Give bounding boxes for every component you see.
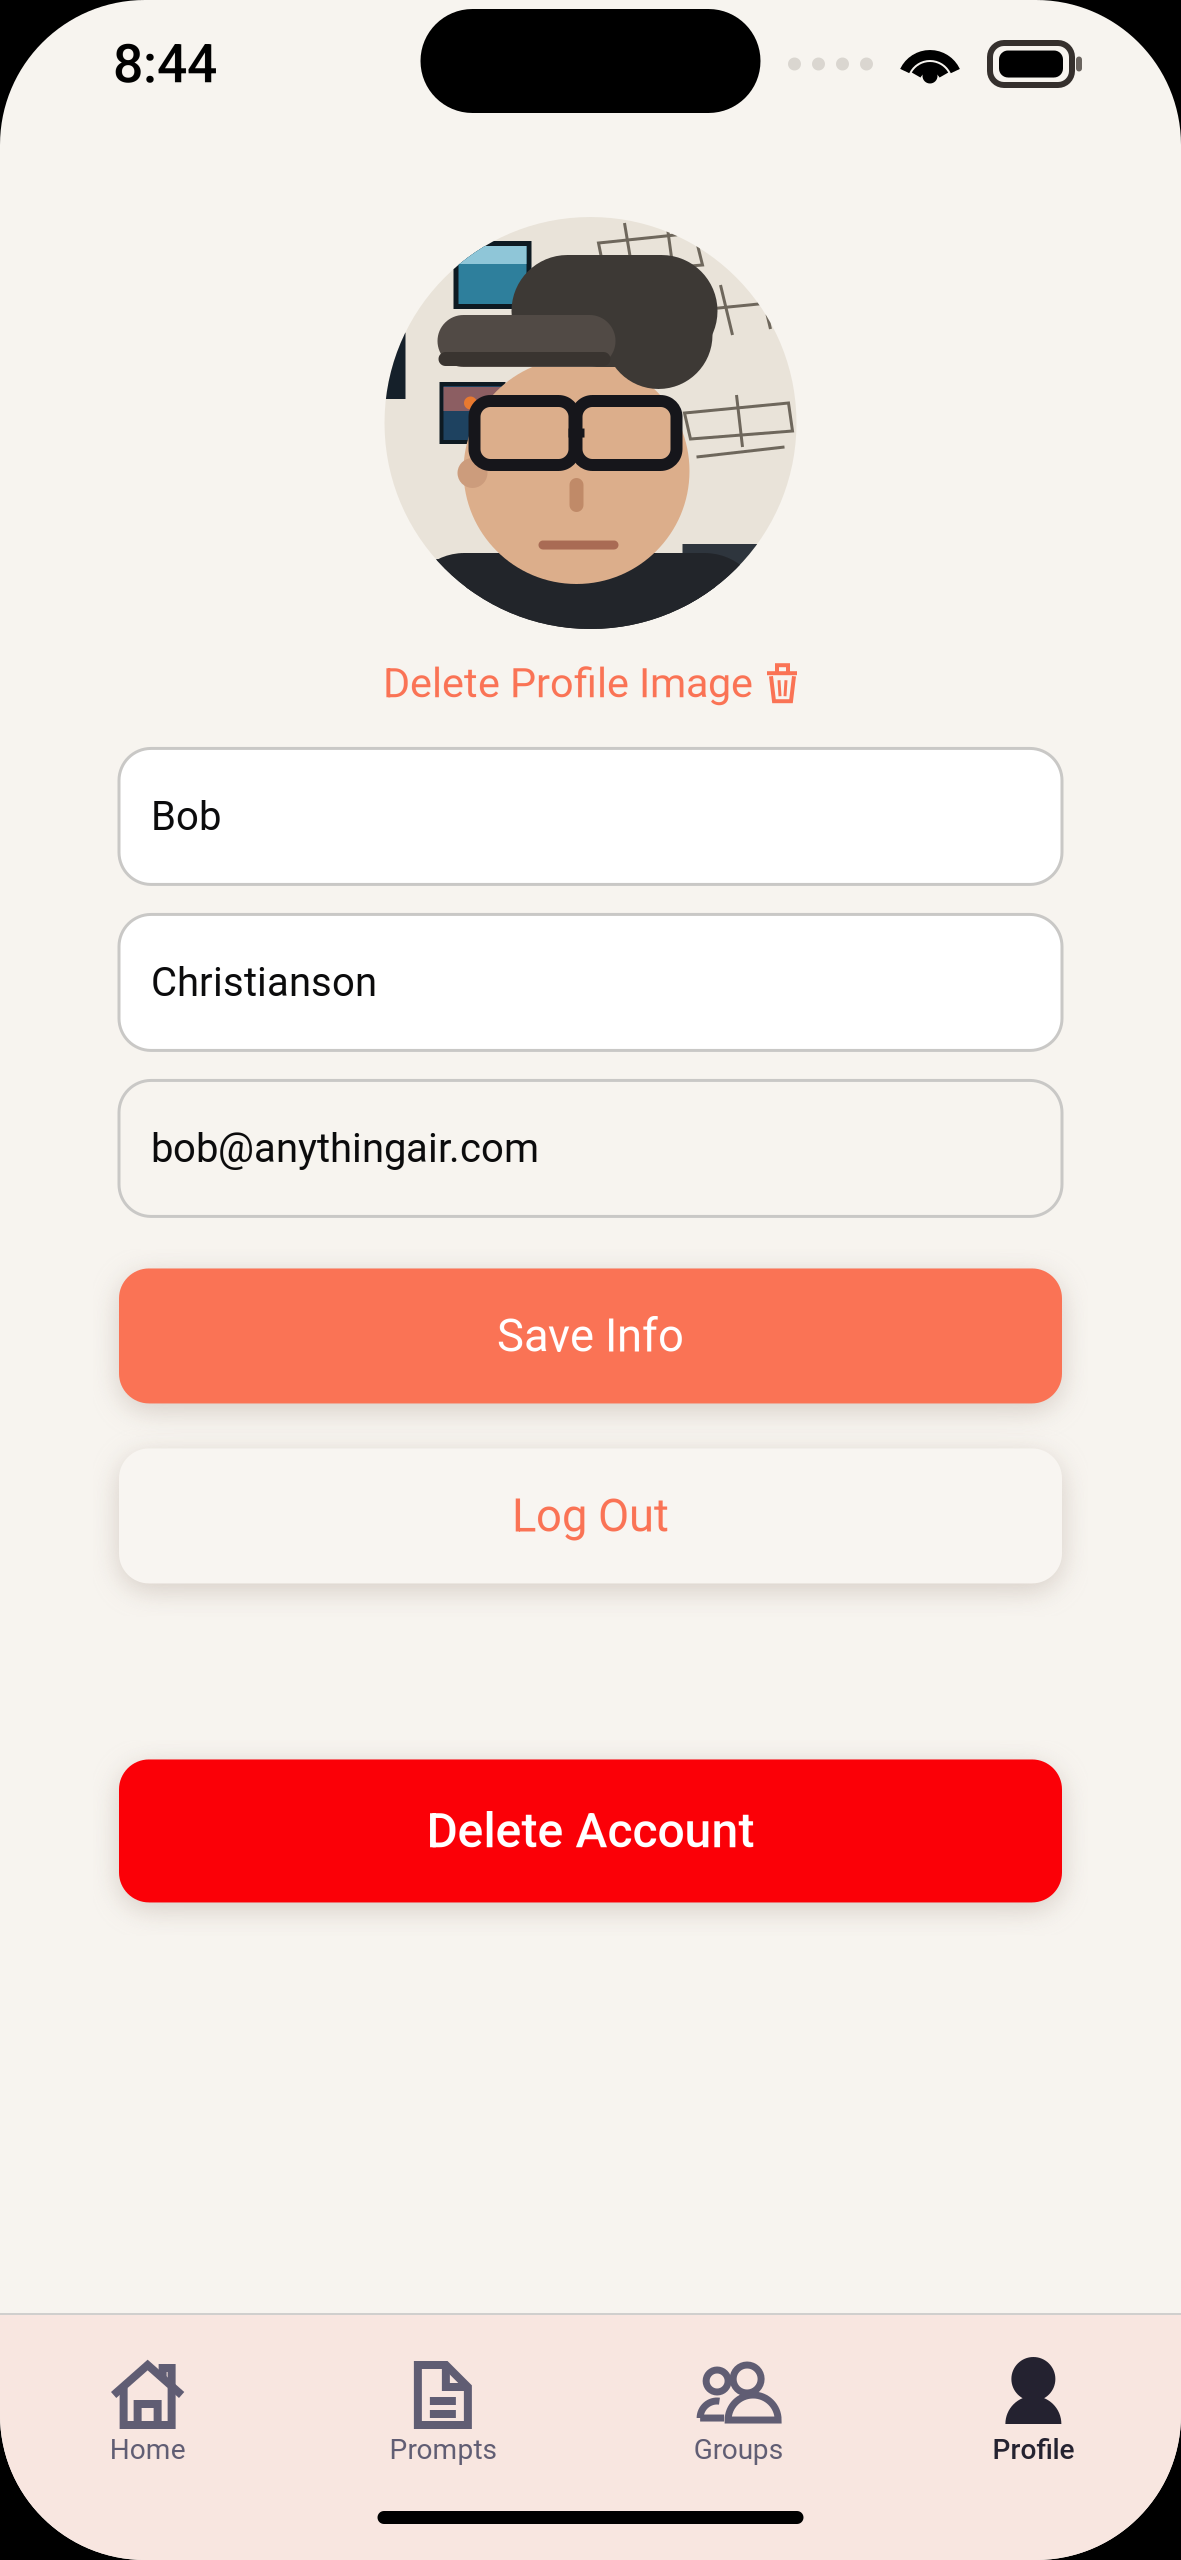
staticText: Christianson: [151, 959, 377, 1006]
staticText: Save Info: [497, 1309, 684, 1362]
button[interactable]: Save Info: [119, 1268, 1062, 1403]
button[interactable]: Home: [0, 2315, 295, 2495]
staticText: Groups: [694, 2433, 783, 2466]
button[interactable]: Groups: [590, 2315, 886, 2495]
button[interactable]: Log Out: [119, 1448, 1062, 1583]
staticText: Log Out: [512, 1489, 669, 1542]
staticText: Home: [110, 2433, 186, 2466]
staticText: Profile: [992, 2433, 1074, 2466]
staticText: Delete Profile Image: [383, 659, 753, 707]
staticText: 8:44: [113, 33, 217, 95]
staticText: Bob: [151, 793, 221, 840]
button[interactable]: Prompts: [295, 2315, 590, 2495]
button[interactable]: Profile: [886, 2315, 1181, 2495]
staticText: Delete Account: [426, 1803, 754, 1859]
staticText: Prompts: [389, 2433, 496, 2466]
button[interactable]: Delete Account: [119, 1759, 1062, 1902]
button[interactable]: Delete Profile Image: [383, 629, 798, 722]
staticText: bob@anythingair.com: [151, 1125, 539, 1172]
